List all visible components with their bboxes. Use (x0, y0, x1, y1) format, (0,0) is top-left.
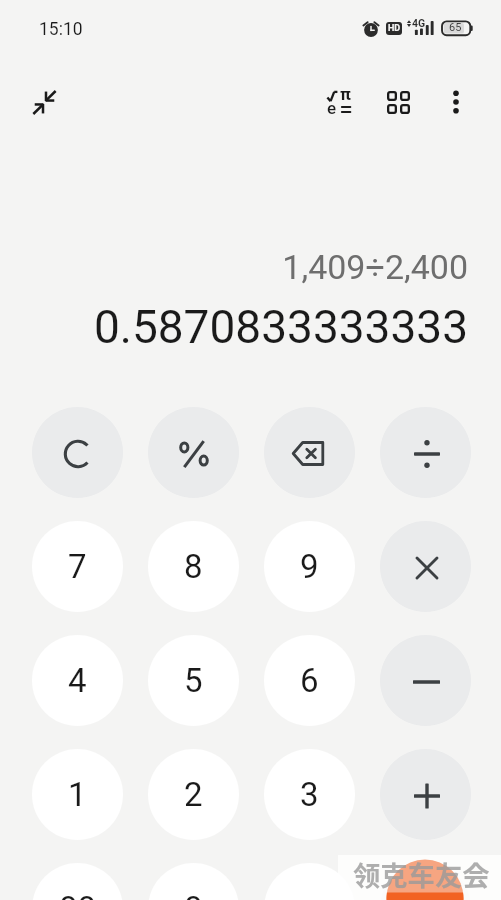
staticText: 00 (59, 889, 97, 900)
staticText: 65 (449, 21, 462, 34)
staticText: 领克车友会 (353, 854, 490, 894)
staticText: 0 (184, 889, 203, 900)
staticText: 3 (300, 775, 319, 814)
button[interactable]: Double zero (32, 863, 123, 900)
staticText: 6 (300, 661, 319, 700)
staticText: 2 (184, 775, 203, 814)
button[interactable]: 3 (264, 749, 355, 840)
button[interactable]: 4 (32, 635, 123, 726)
staticText: 1,409÷2,400 (0, 247, 468, 287)
button[interactable]: 5 (148, 635, 239, 726)
staticText: π (340, 84, 351, 104)
button[interactable]: 9 (264, 521, 355, 612)
button[interactable]: Percent (148, 407, 239, 498)
staticText: 8 (184, 547, 203, 586)
staticText: 4G (412, 17, 426, 29)
staticText: 5 (184, 661, 203, 700)
button[interactable]: Clear (32, 407, 123, 498)
button[interactable]: Minus (380, 635, 471, 726)
button[interactable]: Keypad layout (374, 78, 422, 126)
button[interactable]: Multiply (380, 521, 471, 612)
staticText: 9 (300, 547, 319, 586)
button[interactable]: Backspace (264, 407, 355, 498)
button[interactable]: More options (432, 78, 480, 126)
staticText: 1 (68, 775, 87, 814)
staticText: 4 (68, 661, 87, 700)
button[interactable]: Plus (380, 749, 471, 840)
staticText: HD (388, 23, 401, 34)
button[interactable]: 1 (32, 749, 123, 840)
staticText: 15:10 (39, 19, 83, 40)
button[interactable]: 2 (148, 749, 239, 840)
staticText: 0.5870833333333 (0, 300, 468, 354)
button[interactable]: 8 (148, 521, 239, 612)
button[interactable]: 0 (148, 863, 239, 900)
staticText: e (327, 98, 337, 118)
button[interactable]: Scientific mode (315, 78, 363, 126)
button[interactable]: 7 (32, 521, 123, 612)
button[interactable]: Collapse (20, 78, 68, 126)
button[interactable]: Decimal point (264, 863, 355, 900)
button[interactable]: 6 (264, 635, 355, 726)
button[interactable]: Equals (380, 863, 471, 900)
staticText: 7 (68, 547, 87, 586)
button[interactable]: Divide (380, 407, 471, 498)
staticText: = (416, 889, 435, 900)
